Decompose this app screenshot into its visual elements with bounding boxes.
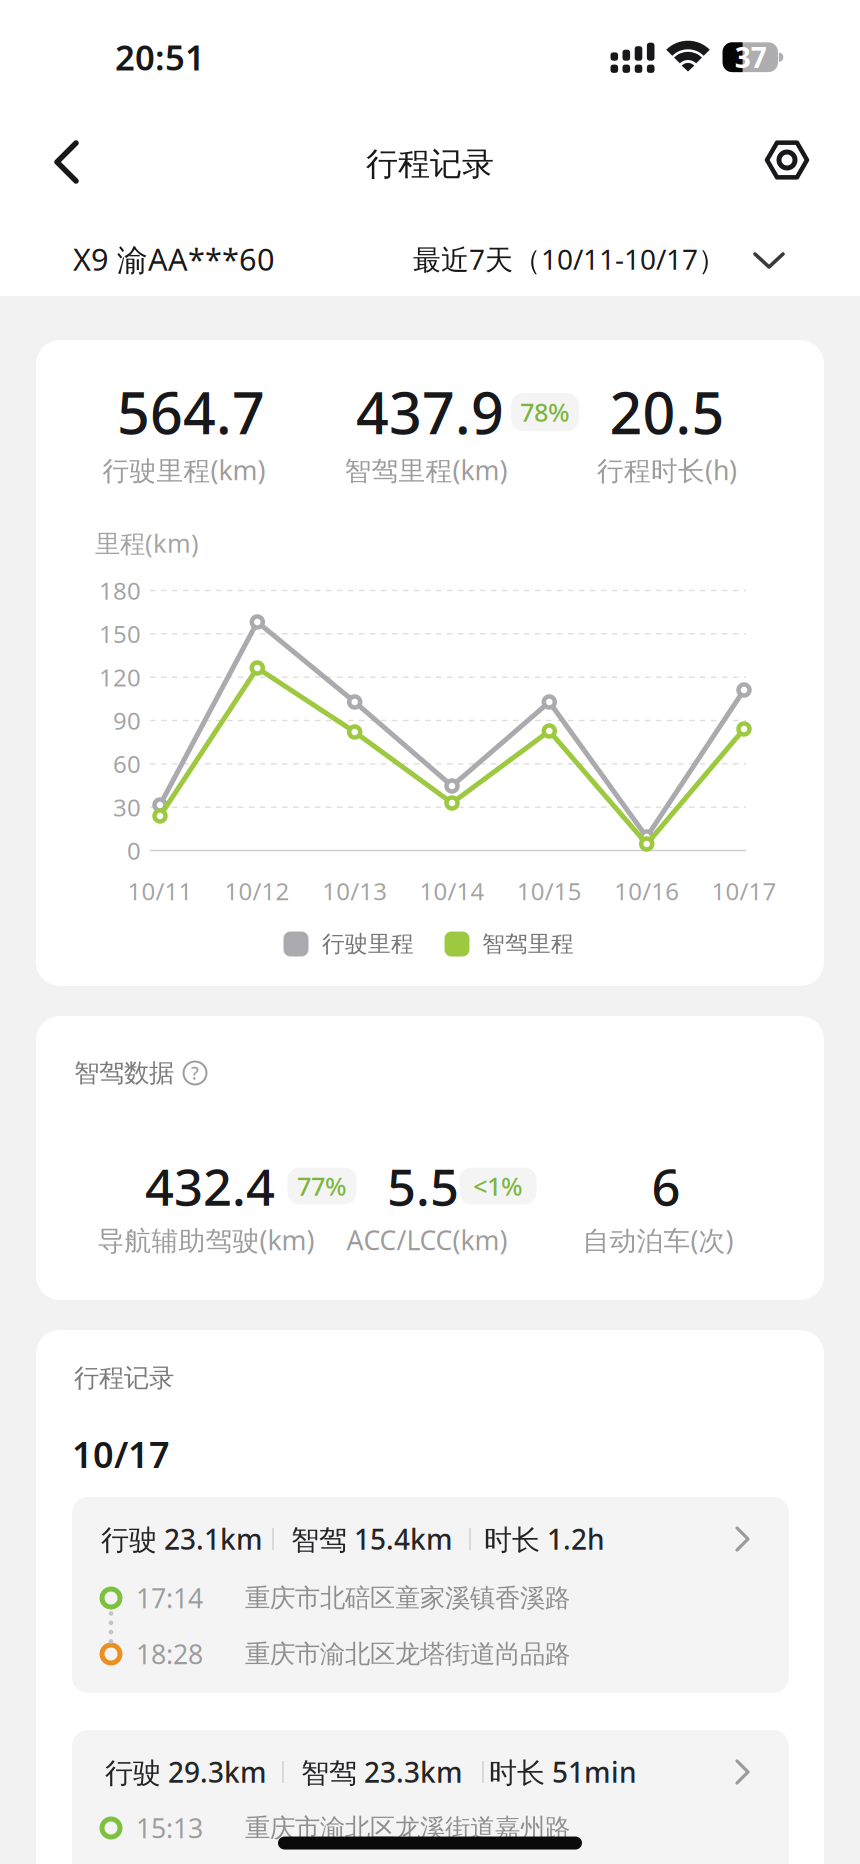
staticText: 90: [113, 705, 141, 736]
button[interactable]: 最近7天（10/11-10/17）: [413, 229, 791, 289]
staticText: 20:51: [115, 34, 205, 80]
staticText: 重庆市渝北区龙塔街道尚品路: [245, 1638, 570, 1669]
button[interactable]: Back: [43, 135, 97, 189]
button[interactable]: Settings: [760, 133, 814, 187]
staticText: 0: [127, 835, 141, 866]
staticText: 智驾 15.4km: [291, 1520, 453, 1558]
staticText: 行驶 23.1km: [101, 1520, 263, 1558]
button[interactable]: X9 渝AA***60: [73, 229, 353, 289]
staticText: 时长 1.2h: [484, 1520, 605, 1558]
staticText: 15:13: [136, 1810, 203, 1846]
staticText: 行程记录: [74, 1362, 174, 1393]
staticText: 60: [113, 748, 141, 780]
staticText: 30: [113, 791, 141, 823]
staticText: 最近7天（10/11-10/17）: [413, 240, 726, 278]
staticText: 重庆市渝北区龙溪街道嘉州路: [245, 1812, 570, 1843]
staticText: 智驾里程: [482, 930, 574, 958]
staticText: 5.5: [387, 1152, 459, 1220]
button[interactable]: 行驶 29.3km: [0, 0, 860, 1864]
staticText: 行驶里程: [322, 930, 414, 958]
staticText: 20.5: [609, 374, 724, 450]
staticText: 432.4: [145, 1152, 275, 1220]
staticText: 智驾 23.3km: [301, 1753, 463, 1791]
staticText: 150: [99, 618, 141, 650]
staticText: 时长 51min: [489, 1753, 637, 1791]
button[interactable]: 行驶 23.1km: [0, 0, 860, 1864]
staticText: 10/14: [419, 875, 484, 907]
staticText: 里程(km): [95, 526, 199, 560]
staticText: 564.7: [117, 374, 265, 450]
staticText: 重庆市北碚区童家溪镇香溪路: [245, 1582, 570, 1613]
button[interactable]: 智驾数据说明: [175, 1053, 215, 1093]
staticText: 78%: [520, 395, 570, 429]
staticText: 18:28: [136, 1636, 203, 1672]
staticText: 10/16: [614, 875, 679, 907]
staticText: 10/15: [517, 875, 582, 907]
staticText: 行驶 29.3km: [105, 1753, 267, 1791]
staticText: 自动泊车(次): [582, 1222, 733, 1258]
staticText: 6: [651, 1152, 680, 1220]
staticText: 120: [99, 661, 141, 693]
staticText: 10/11: [127, 875, 192, 907]
staticText: 17:14: [136, 1580, 203, 1616]
staticText: 10/17: [711, 875, 776, 907]
staticText: 导航辅助驾驶(km): [97, 1222, 314, 1258]
staticText: <1%: [473, 1169, 523, 1203]
staticText: 180: [99, 575, 141, 606]
staticText: ACC/LCC(km): [346, 1222, 507, 1258]
staticText: 10/13: [322, 875, 387, 907]
staticText: 10/12: [224, 875, 289, 907]
staticText: 智驾数据: [74, 1057, 174, 1088]
staticText: 10/17: [72, 1430, 170, 1478]
staticText: 437.9: [356, 374, 504, 450]
staticText: 智驾里程(km): [344, 452, 507, 488]
staticText: 77%: [297, 1169, 347, 1203]
staticText: 37: [735, 39, 767, 76]
staticText: 行程记录: [366, 144, 494, 184]
staticText: ?: [191, 1061, 199, 1084]
staticText: X9 渝AA***60: [73, 239, 275, 279]
staticText: 行程时长(h): [597, 452, 737, 488]
staticText: 行驶里程(km): [102, 452, 265, 488]
